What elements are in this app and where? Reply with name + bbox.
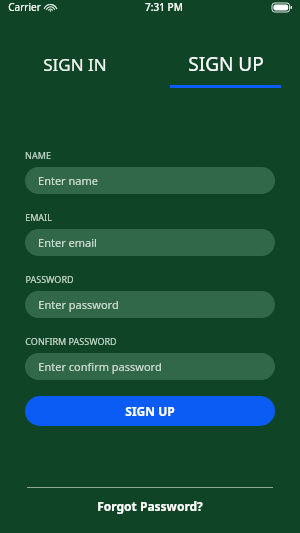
staticText: SIGN IN	[43, 53, 107, 76]
button[interactable]: Enter password	[25, 291, 275, 318]
button[interactable]: Enter confirm password	[25, 353, 275, 380]
staticText: 7:31 PM	[145, 0, 183, 14]
button[interactable]: SIGN UP	[150, 51, 300, 88]
staticText: Forgot Password?	[97, 498, 203, 514]
button[interactable]: Enter name	[25, 167, 275, 194]
staticText: PASSWORD	[25, 273, 74, 285]
button[interactable]: Enter email	[25, 229, 275, 256]
staticText: Enter name	[38, 173, 98, 188]
staticText: Enter confirm password	[38, 359, 162, 374]
staticText: CONFIRM PASSWORD	[25, 335, 117, 347]
staticText: Enter password	[38, 297, 119, 312]
button[interactable]: Forgot Password?	[27, 496, 273, 516]
button[interactable]: SIGN UP	[25, 396, 275, 426]
staticText: EMAIL	[25, 211, 52, 223]
staticText: SIGN UP	[125, 403, 175, 419]
staticText: Enter email	[38, 235, 97, 250]
button[interactable]: SIGN IN	[0, 51, 150, 89]
staticText: NAME	[25, 149, 51, 161]
staticText: Carrier	[8, 0, 41, 14]
staticText: SIGN UP	[188, 51, 264, 77]
